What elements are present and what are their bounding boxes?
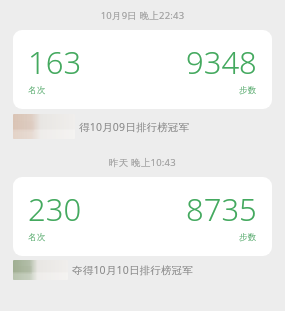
staticText: 夺得10月10日排行榜冠军 [72,263,194,277]
staticText: 10月9日 晚上22:43 [0,9,285,22]
button[interactable]: 230 [13,177,272,256]
staticText: 230 [28,188,82,230]
staticText: 163 [28,41,82,83]
staticText: 步数 [239,85,257,96]
staticText: 得10月09日排行榜冠军 [79,120,190,134]
staticText: 名次 [28,85,46,96]
staticText: 昨天 晚上10:43 [0,156,285,169]
staticText: 8735 [186,188,257,230]
staticText: 步数 [239,232,257,243]
staticText: 名次 [28,232,46,243]
button[interactable]: 得10月09日排行榜冠军 [13,114,272,139]
staticText: 9348 [186,41,257,83]
button[interactable]: 163 [13,30,272,109]
button[interactable]: 夺得10月10日排行榜冠军 [13,260,272,280]
